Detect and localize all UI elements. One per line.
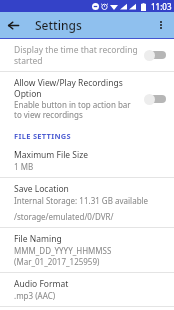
button[interactable]: More options <box>148 12 174 38</box>
staticText: Allow View/Play Recordings Option <box>14 77 138 99</box>
other: Toggle <box>144 93 166 105</box>
button[interactable]: Audio Format <box>0 273 174 306</box>
button[interactable]: Maximum File Size <box>0 144 174 177</box>
button[interactable]: File Naming <box>0 228 174 272</box>
staticText: MMM_DD_YYYY_HHMMSS <box>14 245 112 256</box>
other: Toggle <box>144 49 166 61</box>
staticText: File Naming <box>14 233 62 245</box>
staticText: /storage/emulated/0/DVR/ <box>14 211 114 222</box>
staticText: 11:03 <box>151 1 172 12</box>
button[interactable]: Display the time that recording started <box>0 39 174 71</box>
staticText: Display the time that recording started <box>14 44 138 66</box>
staticText: Audio Format <box>14 278 69 290</box>
staticText: Maximum File Size <box>14 149 88 161</box>
staticText: Save Location <box>14 183 69 195</box>
button[interactable]: Save Location <box>0 178 174 227</box>
button[interactable]: Allow View/Play Recordings Option <box>0 72 174 126</box>
staticText: 1 MB <box>14 161 34 172</box>
staticText: FILE SETTINGS <box>14 131 71 141</box>
button[interactable]: Back <box>0 12 26 38</box>
staticText: .mp3 (AAC) <box>14 290 56 301</box>
staticText: Enable button in top action bar to view … <box>14 99 138 121</box>
staticText: Internal Storage: 11.31 GB available <box>14 195 149 206</box>
staticText: (Mar_01_2017_125959) <box>14 256 100 267</box>
staticText: Settings <box>35 17 82 33</box>
